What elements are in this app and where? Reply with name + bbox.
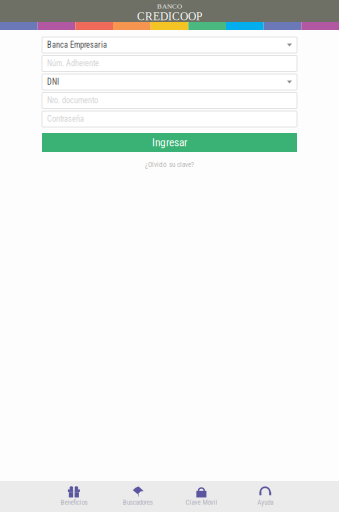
staticText: Buscadores (123, 498, 153, 506)
button[interactable]: Nro. documento (42, 92, 297, 108)
button[interactable]: Banca Empresaria (42, 37, 297, 53)
button[interactable]: Ayuda (233, 481, 297, 512)
staticText: Banca Empresaria (47, 40, 107, 50)
button[interactable]: Ingresar (42, 133, 297, 152)
button[interactable]: Beneficios (42, 481, 106, 512)
staticText: Contraseña (47, 114, 84, 124)
button[interactable]: ¿Olvidó su clave? (42, 160, 297, 169)
button[interactable]: Núm. Adherente (42, 55, 297, 71)
staticText: Núm. Adherente (47, 59, 99, 68)
staticText: Ingresar (152, 136, 187, 149)
staticText: Ayuda (257, 498, 273, 506)
staticText: CREDICOOP (137, 10, 202, 23)
button[interactable]: Contraseña (42, 111, 297, 127)
staticText: BANCO (157, 2, 182, 10)
button[interactable]: DNI (42, 74, 297, 90)
staticText: Beneficios (60, 498, 87, 506)
staticText: DNI (47, 77, 59, 87)
button[interactable]: Buscadores (106, 481, 170, 512)
button[interactable]: Clave Móvil (169, 481, 233, 512)
staticText: Clave Móvil (185, 498, 217, 506)
staticText: Nro. documento (47, 96, 98, 105)
staticText: ¿Olvidó su clave? (145, 160, 194, 169)
